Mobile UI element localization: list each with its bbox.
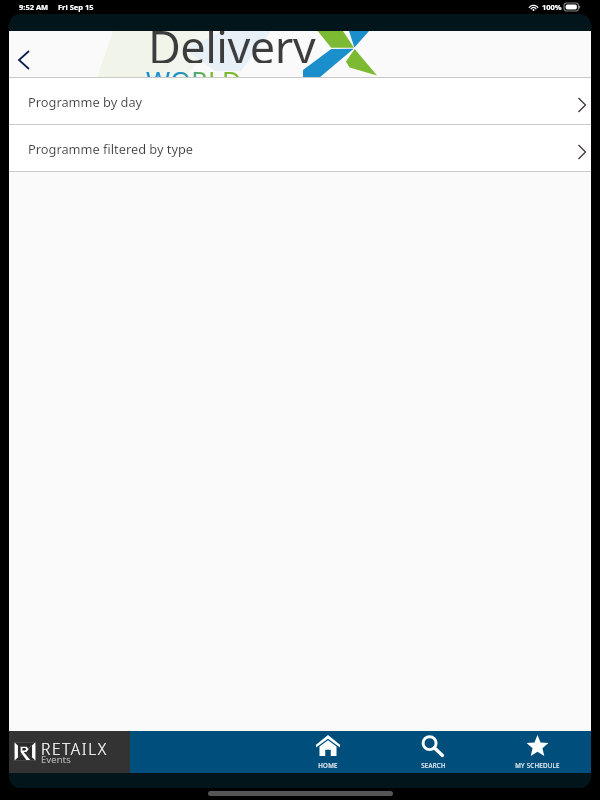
button[interactable]: MY SCHEDULE — [501, 731, 573, 773]
staticText: Programme by day — [28, 93, 143, 110]
staticText: Events — [41, 753, 72, 766]
staticText: WORLD — [146, 62, 242, 78]
staticText: SEARCH — [421, 761, 446, 769]
staticText: Programme filtered by type — [28, 140, 194, 157]
staticText: HOME — [318, 761, 338, 769]
button[interactable]: Programme by day — [9, 78, 591, 125]
staticText: Delivery — [148, 31, 316, 63]
staticText: Fri Sep 15 — [58, 2, 94, 12]
button[interactable]: Back — [9, 31, 47, 78]
button[interactable]: Programme filtered by type — [9, 125, 591, 172]
staticText: RETAILX — [41, 738, 108, 759]
staticText: MY SCHEDULE — [515, 761, 560, 769]
button[interactable]: SEARCH — [397, 731, 469, 773]
button[interactable]: RETAILX — [9, 731, 130, 773]
button[interactable]: HOME — [292, 731, 364, 773]
staticText: 100% — [542, 2, 562, 12]
staticText: 9:52 AM — [19, 2, 49, 12]
